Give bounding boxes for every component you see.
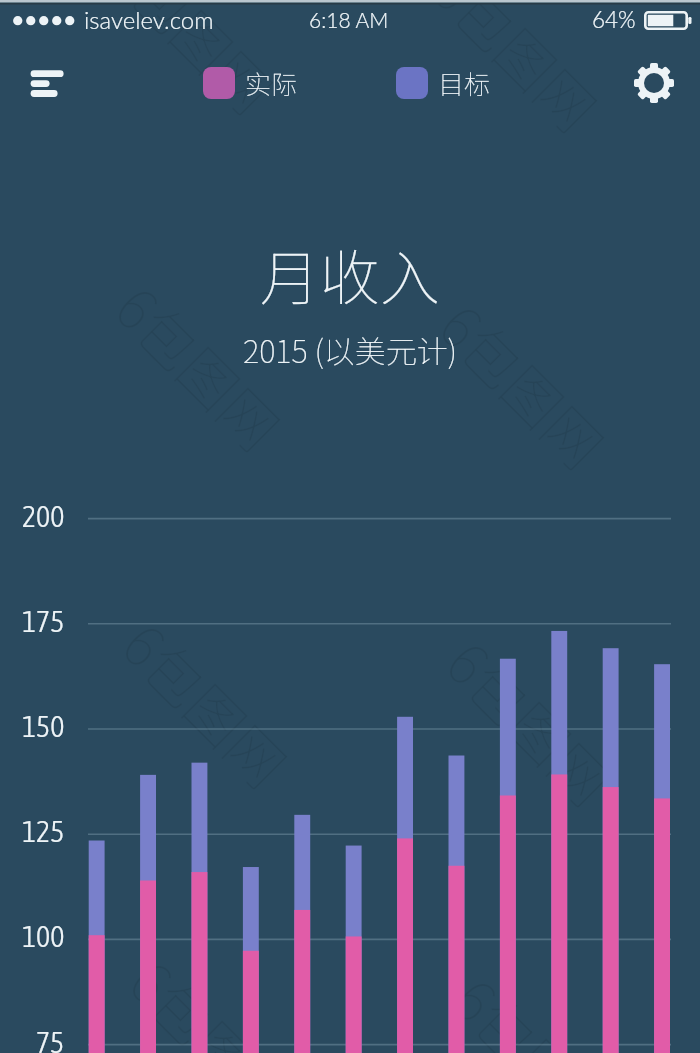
staticText: 6包图网 (437, 958, 638, 1053)
button[interactable]: 实际 (199, 60, 302, 106)
staticText: 175 (22, 604, 65, 638)
button[interactable]: Open navigation menu (22, 62, 72, 104)
staticText: 150 (22, 709, 65, 743)
staticText: 6包图网 (106, 603, 307, 804)
staticText: 6包图网 (113, 940, 314, 1053)
staticText: isavelev.com (84, 5, 214, 34)
staticText: 2015 (以美元计) (243, 327, 457, 372)
staticText: 月收入 (260, 230, 440, 317)
staticText: 目标 (438, 64, 491, 102)
staticText: 6包图网 (92, 0, 293, 130)
staticText: 6包图网 (423, 284, 624, 485)
staticText: 6包图网 (430, 621, 631, 822)
button[interactable]: Settings (630, 59, 678, 107)
staticText: 100 (22, 919, 65, 953)
staticText: 6:18 AM (309, 7, 389, 32)
staticText: 6包图网 (416, 0, 617, 148)
staticText: 实际 (245, 64, 298, 102)
staticText: 6包图网 (99, 266, 300, 467)
staticText: 75 (36, 1025, 65, 1053)
staticText: 200 (22, 499, 65, 533)
staticText: 125 (22, 814, 65, 848)
staticText: 64% (592, 6, 636, 33)
button[interactable]: 目标 (392, 60, 495, 106)
